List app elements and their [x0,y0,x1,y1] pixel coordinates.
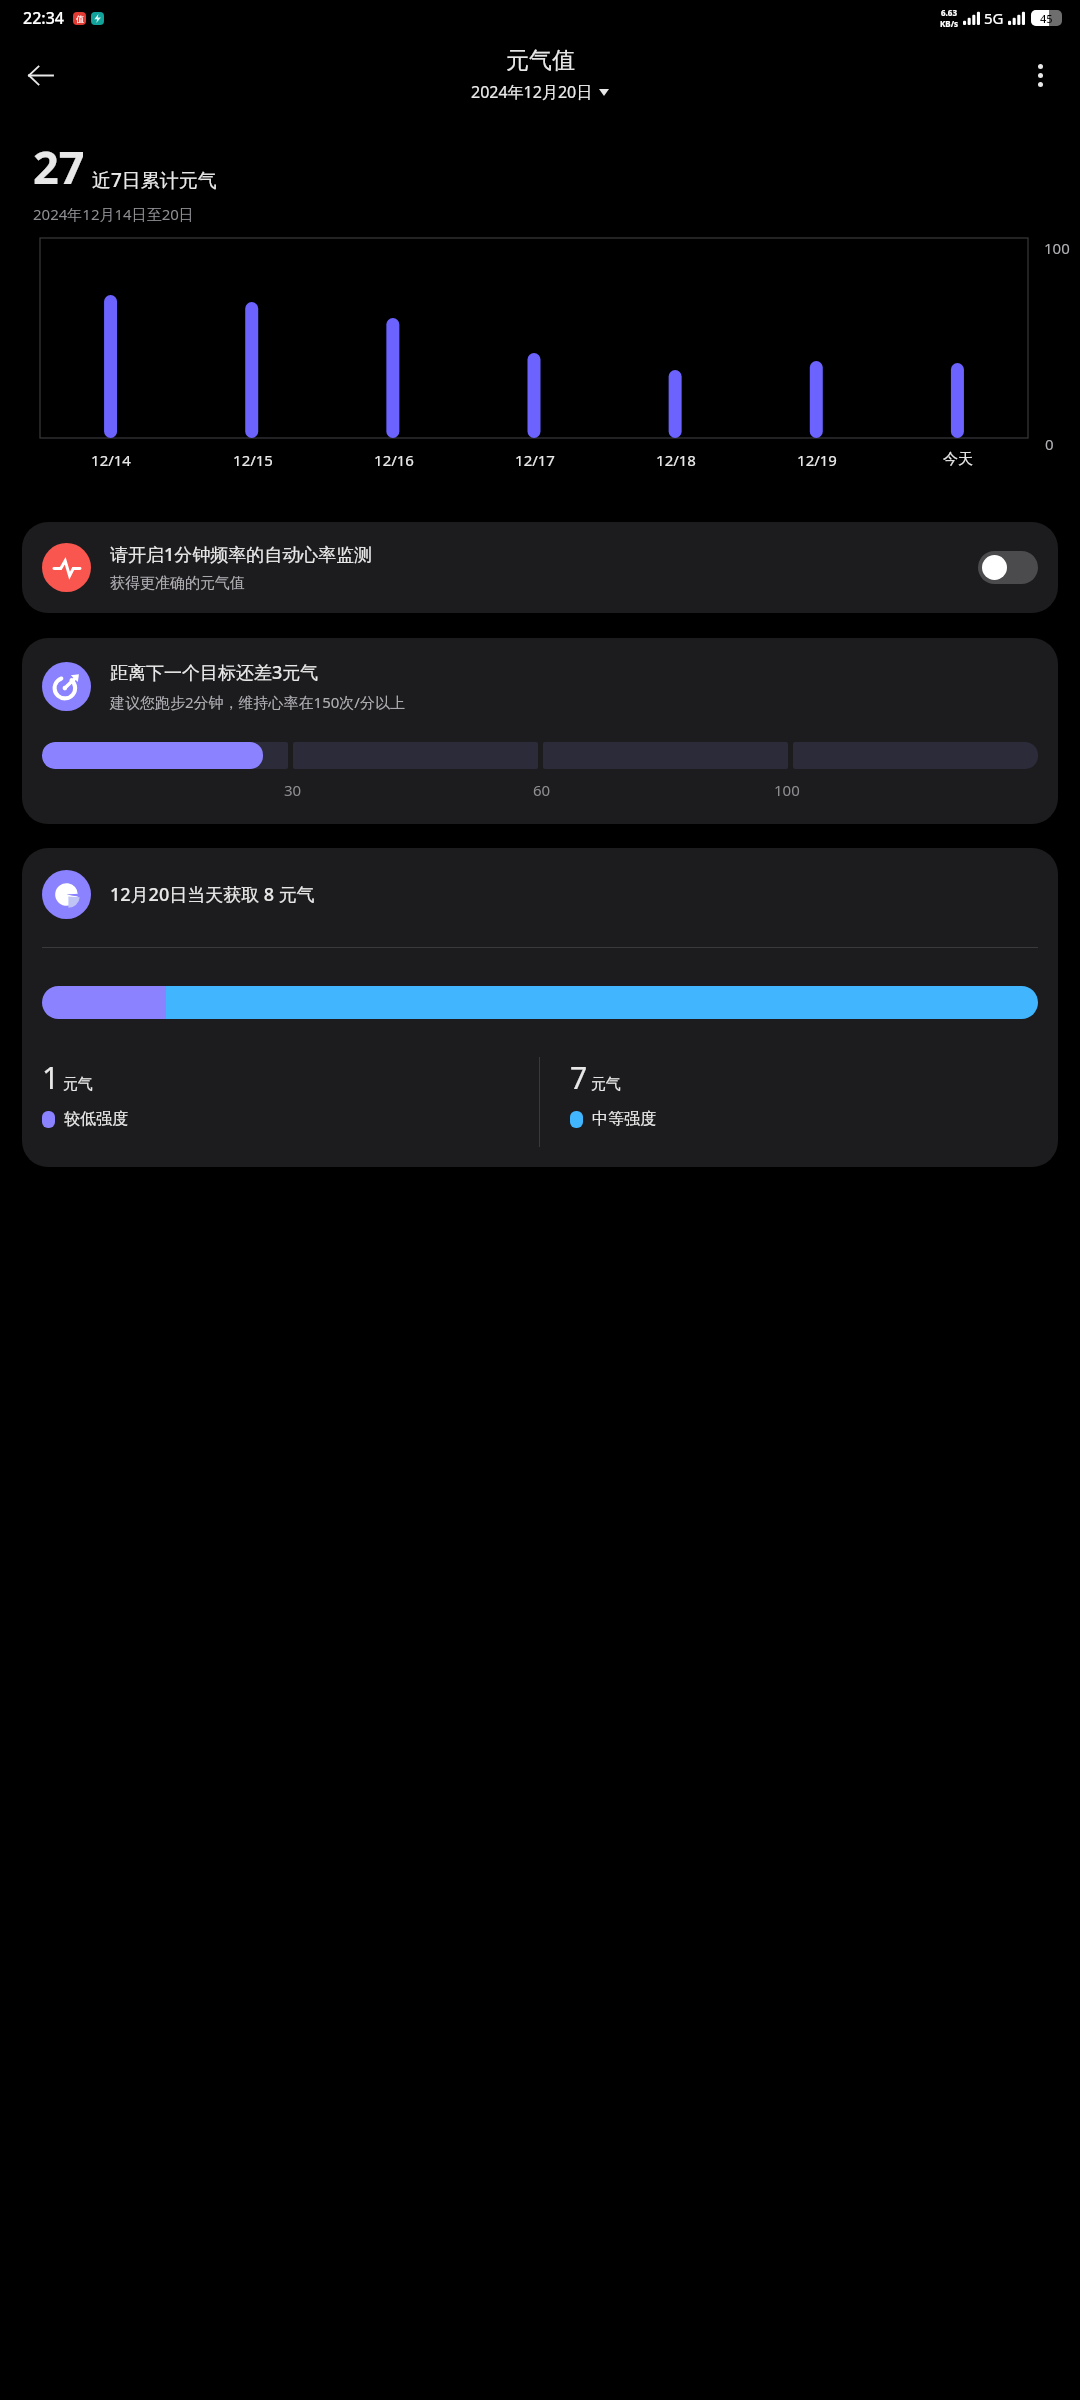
button[interactable]: 请开启1分钟频率的自动心率监测 [22,522,1058,613]
staticText: 12/19 [797,450,837,470]
button[interactable]: Back [14,49,66,101]
staticText: 22:34 [23,7,64,29]
staticText: 12/17 [515,450,555,470]
button[interactable]: 2024年12月20日 [467,80,613,104]
staticText: 30 [284,780,302,800]
staticText: 建议您跑步2分钟，维持心率在150次/分以上 [110,692,405,712]
button[interactable]: More options [1014,49,1066,101]
staticText: 12/14 [91,450,131,470]
staticText: 2024年12月20日 [471,81,593,103]
staticText: 12月20日当天获取 8 元气 [110,882,315,907]
button[interactable]: 12月20日当天获取 8 元气 [22,848,1058,1167]
staticText: 100 [1044,238,1070,258]
staticText: 2024年12月14日至20日 [33,204,194,224]
staticText: 5G [984,8,1004,28]
staticText: 6.63 [941,7,957,18]
staticText: 值 [76,14,84,24]
staticText: 0 [1045,434,1054,454]
staticText: 元气 [63,1075,93,1094]
staticText: 获得更准确的元气值 [110,574,245,593]
staticText: 100 [774,780,800,800]
staticText: KB/s [940,18,958,29]
staticText: 今天 [943,450,973,469]
staticText: 7 [570,1057,588,1098]
staticText: 45 [1040,11,1053,26]
staticText: 1 [42,1057,60,1098]
staticText: 较低强度 [64,1109,128,1129]
button[interactable]: 距离下一个目标还差3元气 [22,638,1058,824]
staticText: 元气 [591,1075,621,1094]
staticText: 60 [533,780,551,800]
staticText: 距离下一个目标还差3元气 [110,660,319,685]
staticText: 12/15 [233,450,273,470]
staticText: 12/18 [656,450,696,470]
staticText: 近7日累计元气 [92,167,217,193]
staticText: 27 [33,136,85,197]
staticText: 12/16 [374,450,414,470]
staticText: 请开启1分钟频率的自动心率监测 [110,542,373,567]
staticText: 中等强度 [592,1109,656,1129]
staticText: 元气值 [506,46,575,75]
button[interactable]: Toggle heart rate monitoring [978,551,1038,584]
